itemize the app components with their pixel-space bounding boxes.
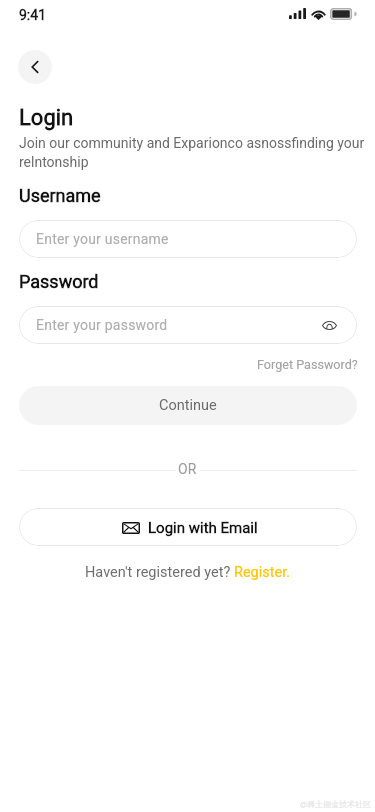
button[interactable]: Show password [317, 313, 341, 337]
button[interactable]: Continue [19, 386, 357, 425]
button[interactable]: Login with Email [19, 508, 357, 546]
staticText: Login with Email [148, 519, 258, 537]
button[interactable]: Register. [234, 564, 291, 581]
staticText: Forget Password? [257, 357, 358, 372]
button[interactable]: Enter your password [19, 306, 357, 344]
staticText: @稀土掘金技术社区 [300, 799, 372, 809]
staticText: Register. [234, 564, 291, 581]
staticText: 9:41 [19, 7, 46, 23]
staticText: Enter your username [36, 231, 169, 247]
staticText: Join our community and Exparionco asnoss… [19, 135, 367, 171]
staticText: Haven't registered yet? [85, 564, 234, 581]
button[interactable]: Back [18, 50, 52, 84]
button[interactable]: Enter your username [19, 220, 357, 258]
staticText: Continue [159, 397, 217, 414]
button[interactable]: Forget Password? [257, 357, 358, 372]
staticText: Password [19, 271, 99, 292]
staticText: Username [19, 185, 101, 206]
staticText: Login [19, 105, 74, 131]
staticText: OR [178, 461, 197, 477]
staticText: Enter your password [36, 317, 168, 333]
